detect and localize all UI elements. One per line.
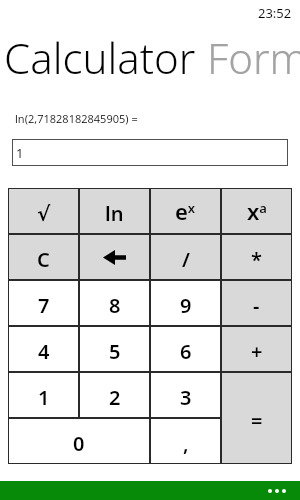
button[interactable]: 2 <box>79 372 150 418</box>
staticText: √ <box>37 202 51 225</box>
staticText: - <box>253 292 260 319</box>
staticText: = <box>251 407 263 434</box>
button[interactable]: ln <box>79 188 150 234</box>
button[interactable]: 8 <box>79 280 150 326</box>
staticText: ln <box>105 200 124 227</box>
button[interactable]: 5 <box>79 326 150 372</box>
staticText: 4 <box>38 338 50 365</box>
staticText: ex <box>175 196 196 226</box>
button[interactable]: , <box>150 418 221 464</box>
staticText: 8 <box>109 292 121 319</box>
button[interactable]: 1 <box>8 372 79 418</box>
staticText: + <box>251 338 263 365</box>
staticText: 1 <box>38 384 50 411</box>
button[interactable]: C <box>8 234 79 280</box>
staticText: / <box>182 246 190 273</box>
button[interactable]: 6 <box>150 326 221 372</box>
staticText: 1 <box>16 144 24 162</box>
staticText: 6 <box>180 338 192 365</box>
button[interactable]: ex <box>150 188 221 234</box>
button[interactable]: 7 <box>8 280 79 326</box>
button[interactable] <box>0 481 300 500</box>
button[interactable]: xa <box>221 188 292 234</box>
staticText: 2 <box>109 384 121 411</box>
button[interactable] <box>79 234 150 280</box>
staticText: 3 <box>180 384 192 411</box>
button[interactable]: / <box>150 234 221 280</box>
button[interactable]: √ <box>8 188 79 234</box>
staticText: xa <box>247 196 267 226</box>
staticText: 7 <box>38 292 50 319</box>
staticText: 9 <box>180 292 192 319</box>
button[interactable]: 3 <box>150 372 221 418</box>
staticText: Formula <box>207 29 300 86</box>
staticText: ln(2,71828182845905) = <box>15 111 138 126</box>
button[interactable]: = <box>221 372 292 464</box>
staticText: Calculator <box>4 29 207 86</box>
staticText: * <box>251 246 262 273</box>
staticText: 23:52 <box>258 4 292 22</box>
button[interactable]: + <box>221 326 292 372</box>
button[interactable]: 4 <box>8 326 79 372</box>
button[interactable]: - <box>221 280 292 326</box>
button[interactable]: 1 <box>12 139 288 166</box>
button[interactable]: 9 <box>150 280 221 326</box>
staticText: 5 <box>109 338 121 365</box>
staticText: , <box>183 430 189 457</box>
staticText: 0 <box>73 430 85 457</box>
button[interactable]: * <box>221 234 292 280</box>
staticText: C <box>37 246 50 273</box>
button[interactable]: 0 <box>8 418 150 464</box>
